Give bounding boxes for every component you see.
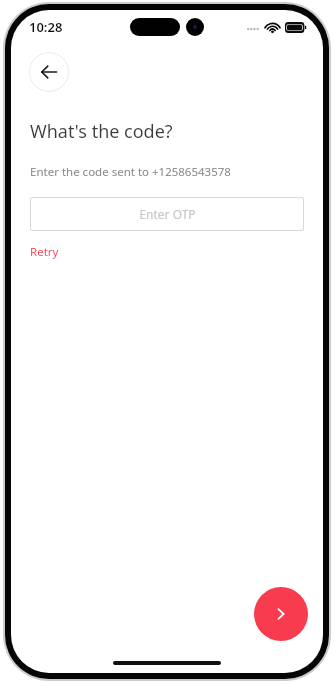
button[interactable]: Back	[29, 52, 69, 92]
staticText: What's the code?	[30, 119, 173, 144]
staticText: Retry	[30, 244, 59, 260]
staticText: 10:28	[29, 18, 63, 36]
button[interactable]: Next	[254, 587, 308, 641]
button[interactable]: Enter OTP	[30, 197, 304, 231]
staticText: Enter OTP	[139, 206, 196, 222]
button[interactable]: Retry	[30, 244, 59, 260]
staticText: Enter the code sent to +12586543578	[30, 164, 231, 180]
